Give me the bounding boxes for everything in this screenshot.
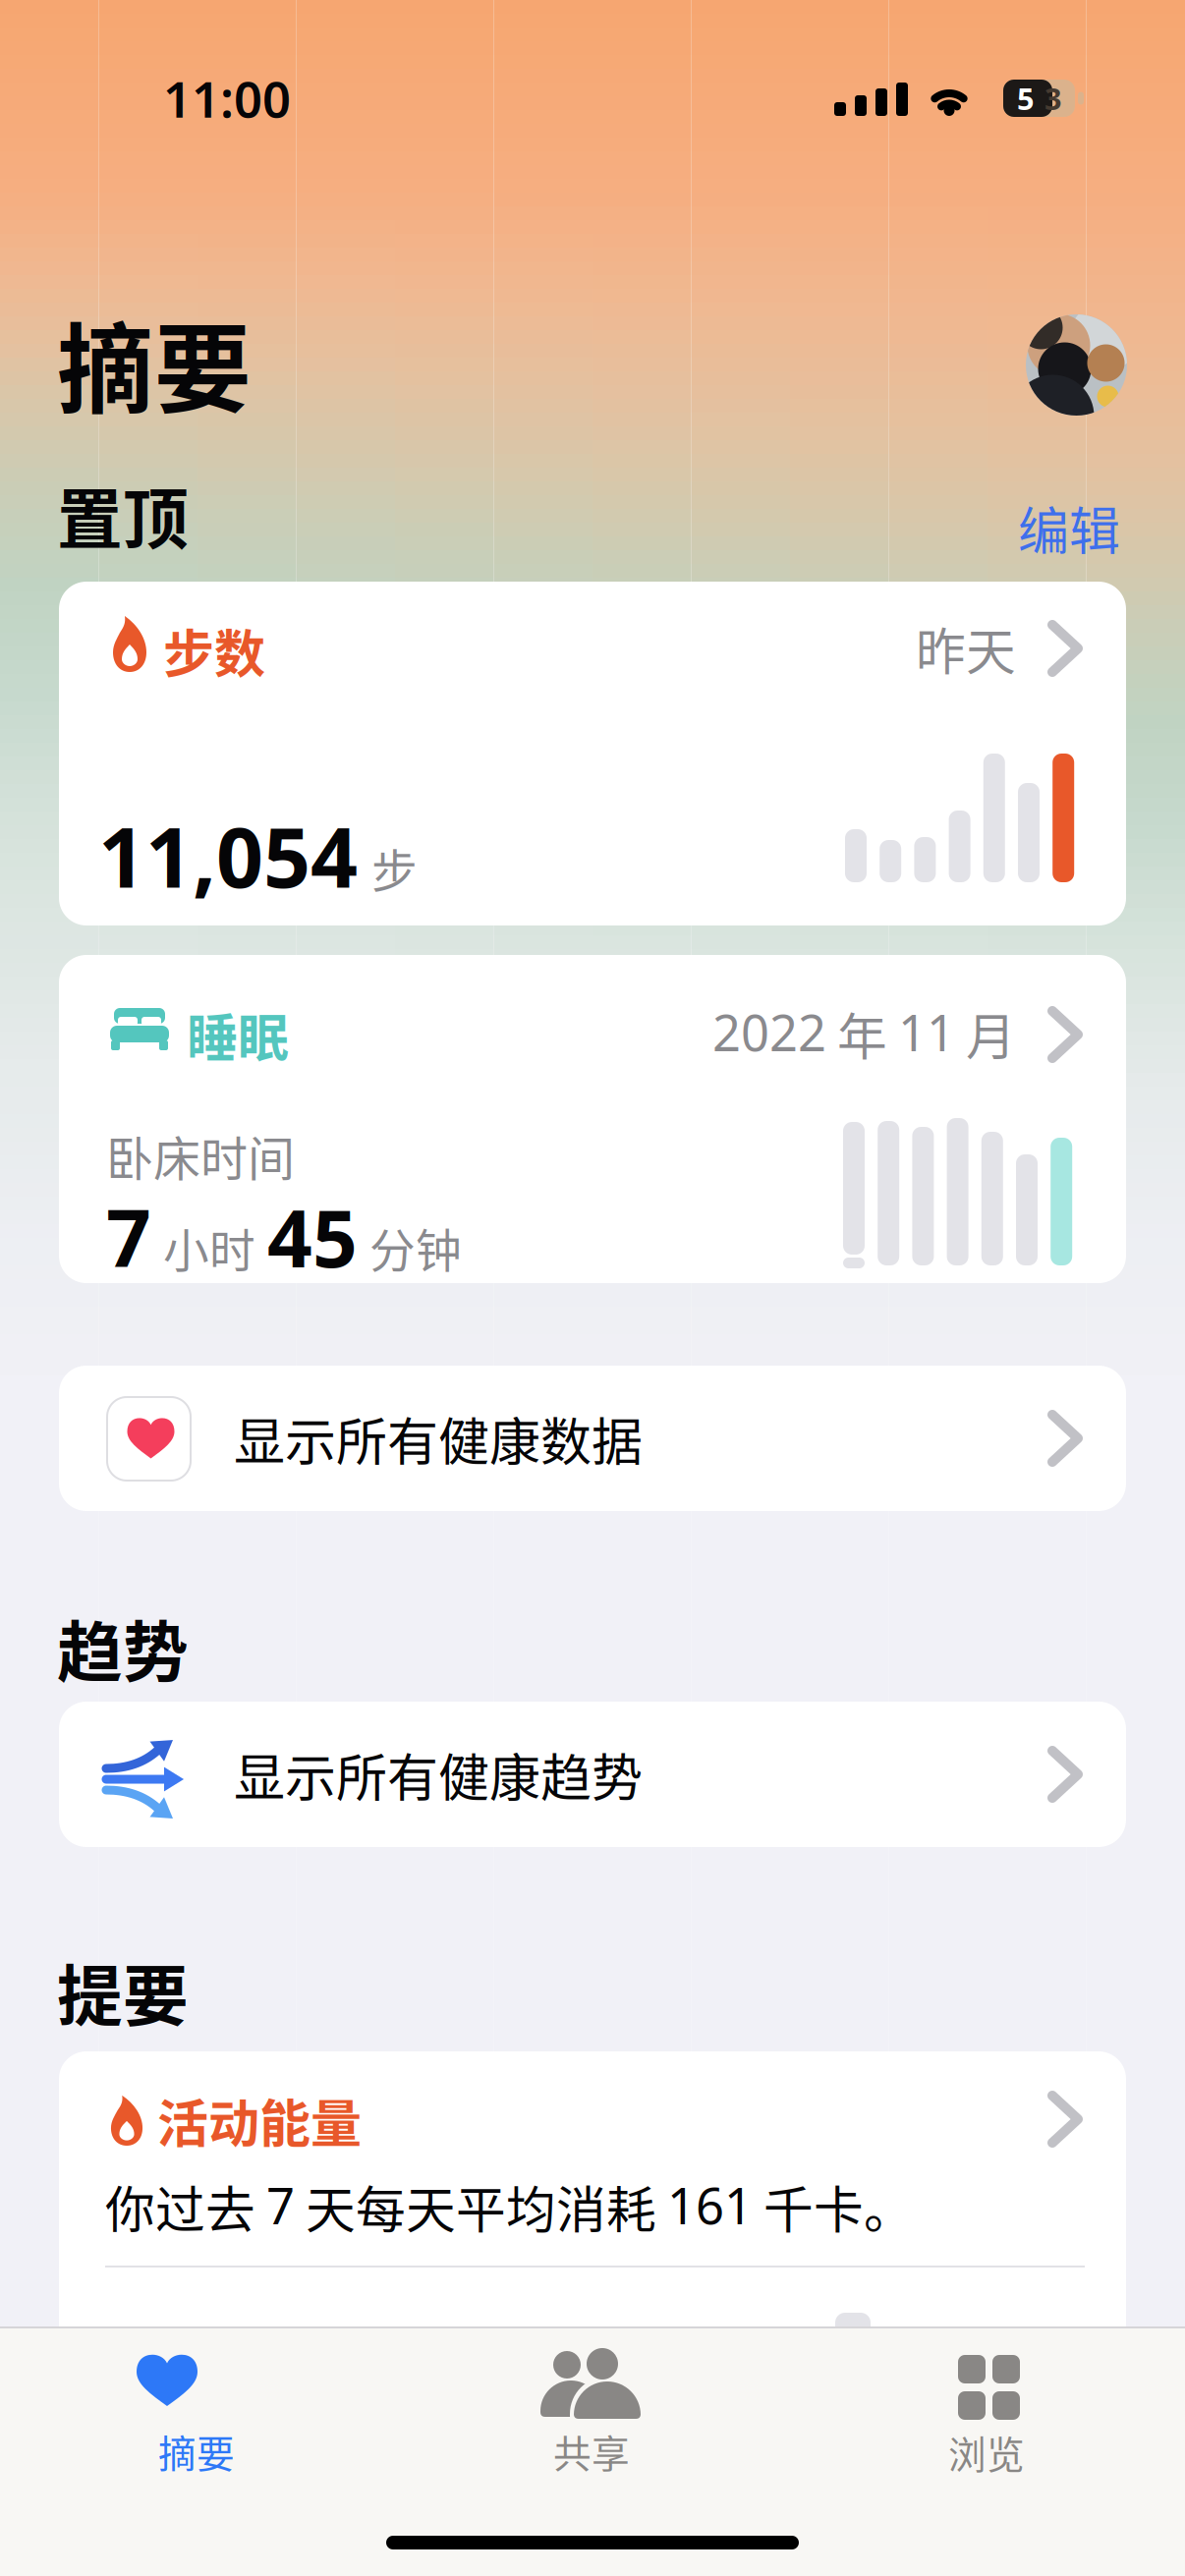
staticText: 摘要 (57, 292, 252, 433)
button[interactable]: 显示所有健康趋势 (59, 1702, 1126, 1847)
staticText: 趋势 (57, 1600, 189, 1695)
staticText: 你过去 7 天每天平均消耗 161 千卡。 (105, 2171, 914, 2242)
staticText: 睡眠 (187, 998, 289, 1072)
button[interactable]: 编辑 (884, 478, 1120, 577)
staticText: 显示所有健康数据 (234, 1401, 643, 1475)
staticText: 活动能量 (157, 2083, 362, 2157)
staticText: 浏览 (948, 2425, 1025, 2480)
staticText: 分钟 (369, 1214, 462, 1281)
button[interactable]: 睡眠 (59, 955, 1126, 1283)
staticText: 共享 (553, 2424, 630, 2479)
button[interactable]: 浏览 (790, 2326, 1185, 2503)
button[interactable]: 显示所有健康数据 (59, 1366, 1126, 1511)
staticText: 步 (371, 835, 418, 901)
staticText: 昨天 (916, 612, 1016, 684)
staticText: 摘要 (158, 2424, 235, 2479)
button[interactable]: 共享 (395, 2326, 790, 2503)
button[interactable] (1026, 314, 1127, 416)
staticText: 11,054 (98, 801, 358, 910)
staticText: 提要 (57, 1944, 189, 2039)
staticText: 11:00 (163, 65, 291, 131)
staticText: 显示所有健康趋势 (234, 1737, 643, 1811)
button[interactable]: 步数 (59, 582, 1126, 925)
button[interactable]: 摘要 (0, 2326, 395, 2503)
staticText: 45 (267, 1185, 358, 1289)
staticText: 7 (106, 1185, 151, 1289)
staticText: 2022 年 11 月 (712, 998, 1016, 1069)
staticText: 步数 (163, 613, 265, 687)
staticText: 卧床时间 (106, 1121, 295, 1189)
staticText: 3 (1044, 78, 1062, 118)
staticText: 5 (1017, 78, 1035, 118)
staticText: 小时 (163, 1214, 255, 1281)
button[interactable]: 活动能量 (59, 2051, 1126, 2515)
staticText: 编辑 (1018, 491, 1120, 565)
staticText: 置顶 (57, 467, 189, 562)
